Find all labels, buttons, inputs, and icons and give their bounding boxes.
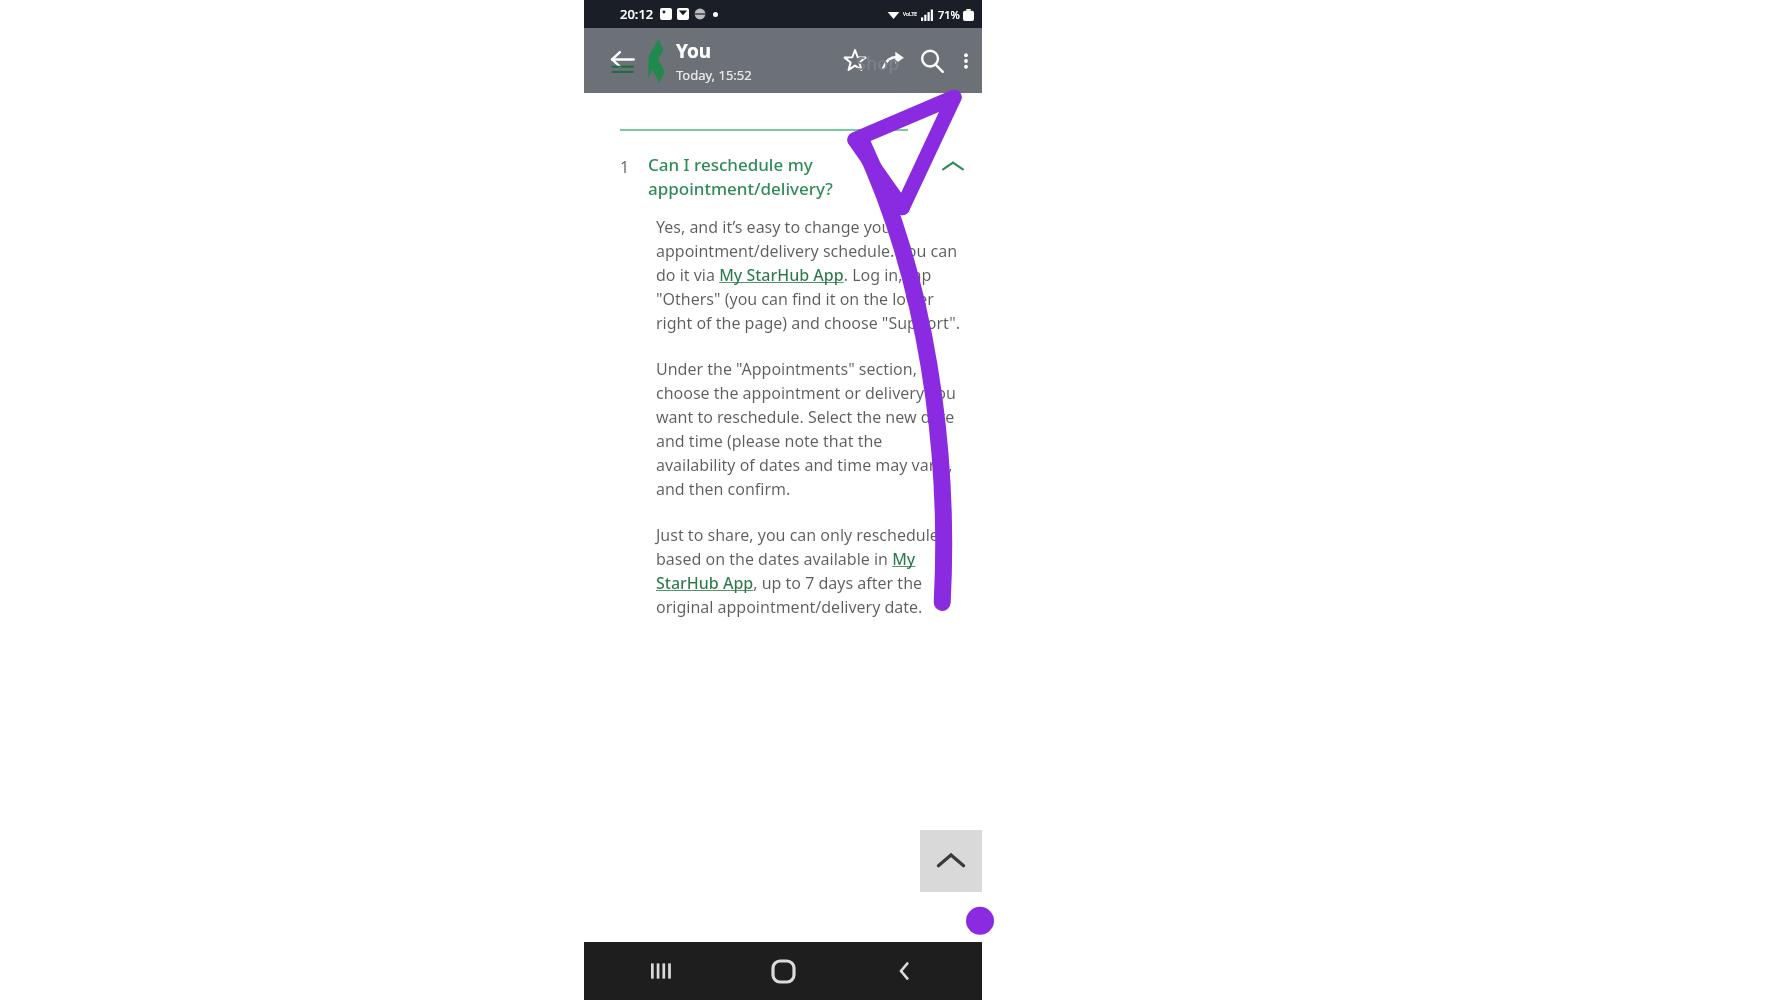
other: Collapse [940, 155, 966, 179]
staticText: Today, 15:52 [676, 66, 752, 84]
staticText: VoLTE [903, 11, 918, 18]
staticText: Just to share, you can only reschedule b… [656, 524, 962, 618]
button[interactable]: Scroll to top [920, 830, 982, 892]
button[interactable]: Share [874, 42, 912, 80]
button[interactable]: Back [602, 41, 642, 81]
staticText: You [676, 38, 712, 64]
button[interactable]: Home [759, 947, 807, 995]
staticText: 1 [620, 156, 630, 178]
button[interactable]: Search [912, 41, 952, 81]
staticText: 71% [938, 7, 960, 22]
staticText: Under the "Appointments" section, choose… [656, 358, 962, 500]
staticText: Can I reschedule my appointment/delivery… [648, 153, 940, 200]
staticText: Shop [856, 51, 900, 76]
staticText: 20:12 [620, 5, 654, 23]
button[interactable]: Recent apps [637, 947, 685, 995]
button[interactable]: Back [881, 947, 929, 995]
staticText: Yes, and it’s easy to change your appoin… [656, 216, 962, 334]
button[interactable]: 1 [584, 153, 982, 200]
button[interactable]: More options [952, 47, 980, 75]
button[interactable]: Star [836, 42, 874, 80]
